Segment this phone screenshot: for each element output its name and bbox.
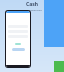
staticText: send money fast (22, 8, 42, 11)
staticText: Cash (26, 1, 38, 8)
button[interactable] (12, 48, 25, 51)
